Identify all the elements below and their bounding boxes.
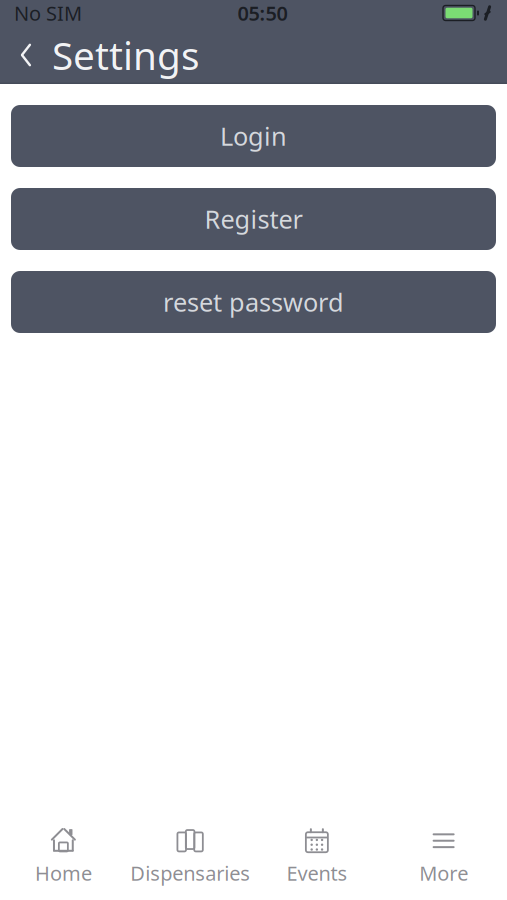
staticText: Register [204,202,302,236]
button[interactable]: reset password [11,271,496,333]
button[interactable]: Dispensaries [127,822,254,892]
button[interactable]: More [380,822,507,892]
staticText: Settings [52,29,200,81]
staticText: More [419,860,468,886]
button[interactable]: Events [253,822,380,892]
staticText: No SIM [14,0,82,26]
staticText: Dispensaries [130,860,250,886]
button[interactable]: Home [0,822,127,892]
staticText: 05:50 [237,0,287,26]
button[interactable]: Register [11,188,496,250]
staticText: Events [286,860,347,886]
button[interactable]: Login [11,105,496,167]
staticText: Login [220,119,287,153]
staticText: Home [35,860,92,886]
button[interactable]: Back [0,26,52,84]
staticText: reset password [163,285,344,319]
